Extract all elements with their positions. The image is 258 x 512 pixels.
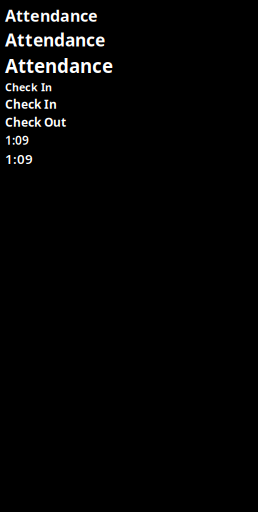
staticText: Attendance [5, 53, 113, 78]
staticText: Check In [5, 80, 52, 94]
staticText: Attendance [5, 28, 105, 51]
staticText: Check Out [5, 114, 66, 130]
staticText: 1:09 [5, 132, 29, 148]
staticText: Check In [5, 96, 57, 112]
staticText: Attendance [5, 5, 98, 26]
staticText: 1:09 [5, 150, 33, 168]
